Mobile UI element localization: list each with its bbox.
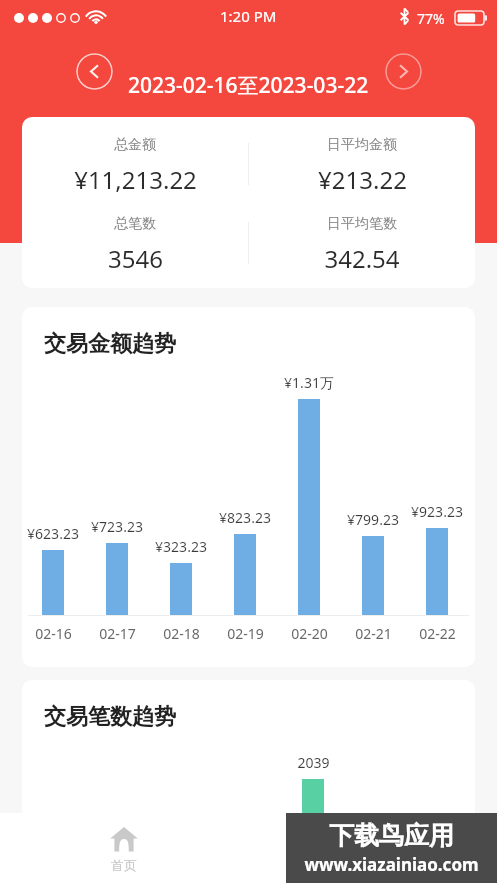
staticText: 77% bbox=[417, 9, 445, 28]
staticText: ¥823.23 bbox=[219, 508, 271, 527]
staticText: 02-18 bbox=[163, 624, 200, 643]
staticText: 3546 bbox=[108, 242, 163, 275]
staticText: 2023-02-16至2023-03-22 bbox=[128, 71, 369, 100]
button[interactable]: 总金额 bbox=[22, 136, 248, 196]
staticText: 02-16 bbox=[35, 624, 72, 643]
staticText: 交易笔数趋势 bbox=[44, 703, 176, 731]
staticText: 日平均金额 bbox=[327, 136, 397, 154]
staticText: 下载鸟应用 bbox=[329, 820, 454, 851]
staticText: ¥723.23 bbox=[91, 517, 143, 536]
staticText: ¥323.23 bbox=[155, 537, 207, 556]
button[interactable]: 总笔数 bbox=[22, 215, 248, 275]
staticText: www.xiazainiao.com bbox=[304, 853, 479, 876]
button[interactable]: 统计 bbox=[248, 813, 497, 883]
staticText: ¥213.22 bbox=[318, 163, 407, 196]
staticText: 02-17 bbox=[99, 624, 136, 643]
button[interactable]: 日平均笔数 bbox=[249, 215, 475, 275]
staticText: 342.54 bbox=[324, 242, 400, 275]
staticText: 02-21 bbox=[355, 624, 392, 643]
button[interactable]: Previous period bbox=[76, 53, 113, 90]
button[interactable]: 首页 bbox=[0, 813, 248, 883]
staticText: ¥623.23 bbox=[27, 524, 79, 543]
staticText: 统计 bbox=[360, 857, 386, 873]
staticText: 02-19 bbox=[227, 624, 264, 643]
staticText: 日平均笔数 bbox=[327, 215, 397, 233]
staticText: 1:20 PM bbox=[220, 6, 277, 26]
staticText: ¥923.23 bbox=[411, 502, 463, 521]
staticText: 总笔数 bbox=[114, 215, 156, 233]
staticText: 首页 bbox=[111, 857, 137, 873]
staticText: ¥11,213.22 bbox=[74, 163, 197, 196]
button[interactable]: 日平均金额 bbox=[249, 136, 475, 196]
staticText: 交易金额趋势 bbox=[44, 330, 176, 358]
staticText: 02-20 bbox=[291, 624, 328, 643]
staticText: 02-22 bbox=[419, 624, 456, 643]
button[interactable]: Next period bbox=[385, 53, 422, 90]
button[interactable] bbox=[302, 779, 324, 870]
staticText: ¥799.23 bbox=[347, 510, 399, 529]
staticText: 2039 bbox=[297, 753, 330, 772]
staticText: ¥1.31万 bbox=[284, 373, 334, 392]
staticText: 总金额 bbox=[114, 136, 156, 154]
